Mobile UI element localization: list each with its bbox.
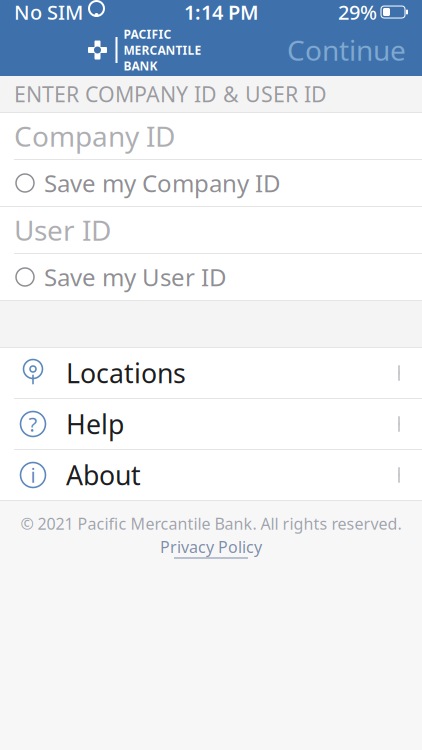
staticText: PACIFIC <box>123 26 171 42</box>
staticText: © 2021 Pacific Mercantile Bank. All righ… <box>20 513 401 534</box>
staticText: No SIM <box>14 0 83 25</box>
staticText: 1:14 PM <box>184 0 259 25</box>
staticText: About <box>66 457 141 493</box>
button[interactable]: ? <box>0 399 422 449</box>
staticText: BANK <box>123 58 157 74</box>
staticText: i <box>30 462 35 488</box>
button[interactable]: Save my Company ID <box>0 160 422 206</box>
staticText: Help <box>66 406 124 442</box>
staticText: ? <box>28 411 37 437</box>
staticText: User ID <box>14 211 111 249</box>
button[interactable]: Continue <box>287 31 422 69</box>
staticText: MERCANTILE <box>123 42 201 58</box>
staticText: Locations <box>66 355 186 391</box>
staticText: Save my User ID <box>44 261 227 293</box>
staticText: 29% <box>338 0 377 25</box>
button[interactable]: Save my User ID <box>0 254 422 300</box>
button[interactable]: Locations <box>0 348 422 398</box>
staticText: Company ID <box>14 117 175 155</box>
button[interactable]: Privacy Policy <box>160 536 262 558</box>
staticText: Continue <box>287 31 406 69</box>
button[interactable]: i <box>0 450 422 500</box>
staticText: ENTER COMPANY ID & USER ID <box>14 80 327 108</box>
staticText: Save my Company ID <box>44 167 281 199</box>
staticText: Privacy Policy <box>160 536 262 557</box>
